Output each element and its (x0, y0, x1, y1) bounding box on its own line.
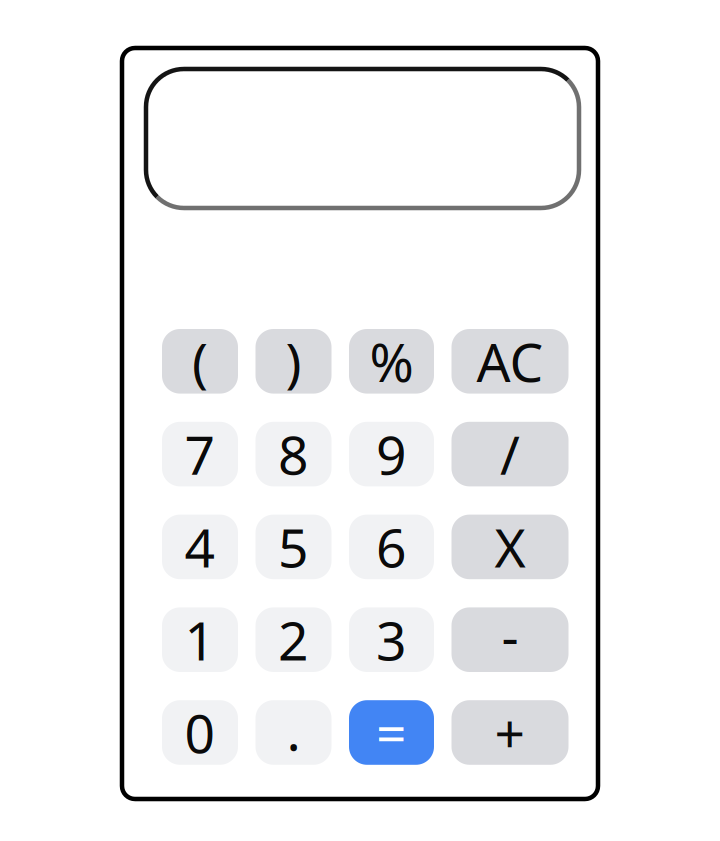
button[interactable]: AC (451, 329, 568, 394)
staticText: 4 (184, 511, 215, 582)
staticText: 2 (278, 604, 309, 675)
button[interactable]: 4 (162, 515, 238, 579)
button[interactable]: / (451, 422, 568, 486)
button[interactable]: % (349, 329, 434, 394)
staticText: - (501, 600, 518, 671)
button[interactable]: X (451, 515, 568, 579)
staticText: 8 (278, 419, 309, 489)
button[interactable]: 3 (349, 607, 434, 672)
button[interactable]: 5 (255, 515, 331, 579)
staticText: 7 (184, 419, 215, 489)
button[interactable]: ( (162, 329, 238, 394)
button[interactable]: 0 (162, 700, 238, 765)
button[interactable]: - (451, 607, 568, 672)
staticText: 6 (376, 511, 407, 582)
button[interactable]: 1 (162, 607, 238, 672)
staticText: = (376, 697, 407, 768)
button[interactable]: 2 (255, 607, 331, 672)
staticText: / (500, 419, 520, 489)
staticText: . (286, 695, 300, 765)
button[interactable]: = (349, 700, 434, 765)
staticText: 5 (278, 511, 309, 582)
button[interactable]: 8 (255, 422, 331, 486)
staticText: X (494, 511, 525, 582)
button[interactable]: 7 (162, 422, 238, 486)
staticText: + (494, 697, 525, 768)
staticText: 1 (184, 604, 215, 675)
staticText: ) (285, 326, 301, 397)
staticText: 0 (184, 697, 215, 768)
button[interactable]: ) (255, 329, 331, 394)
button[interactable]: + (451, 700, 568, 765)
button[interactable]: 9 (349, 422, 434, 486)
staticText: 9 (376, 419, 407, 489)
button[interactable]: . (255, 700, 331, 765)
staticText: % (369, 326, 413, 397)
staticText: AC (476, 326, 543, 397)
staticText: ( (192, 326, 208, 397)
button[interactable]: 6 (349, 515, 434, 579)
staticText: 3 (376, 604, 407, 675)
